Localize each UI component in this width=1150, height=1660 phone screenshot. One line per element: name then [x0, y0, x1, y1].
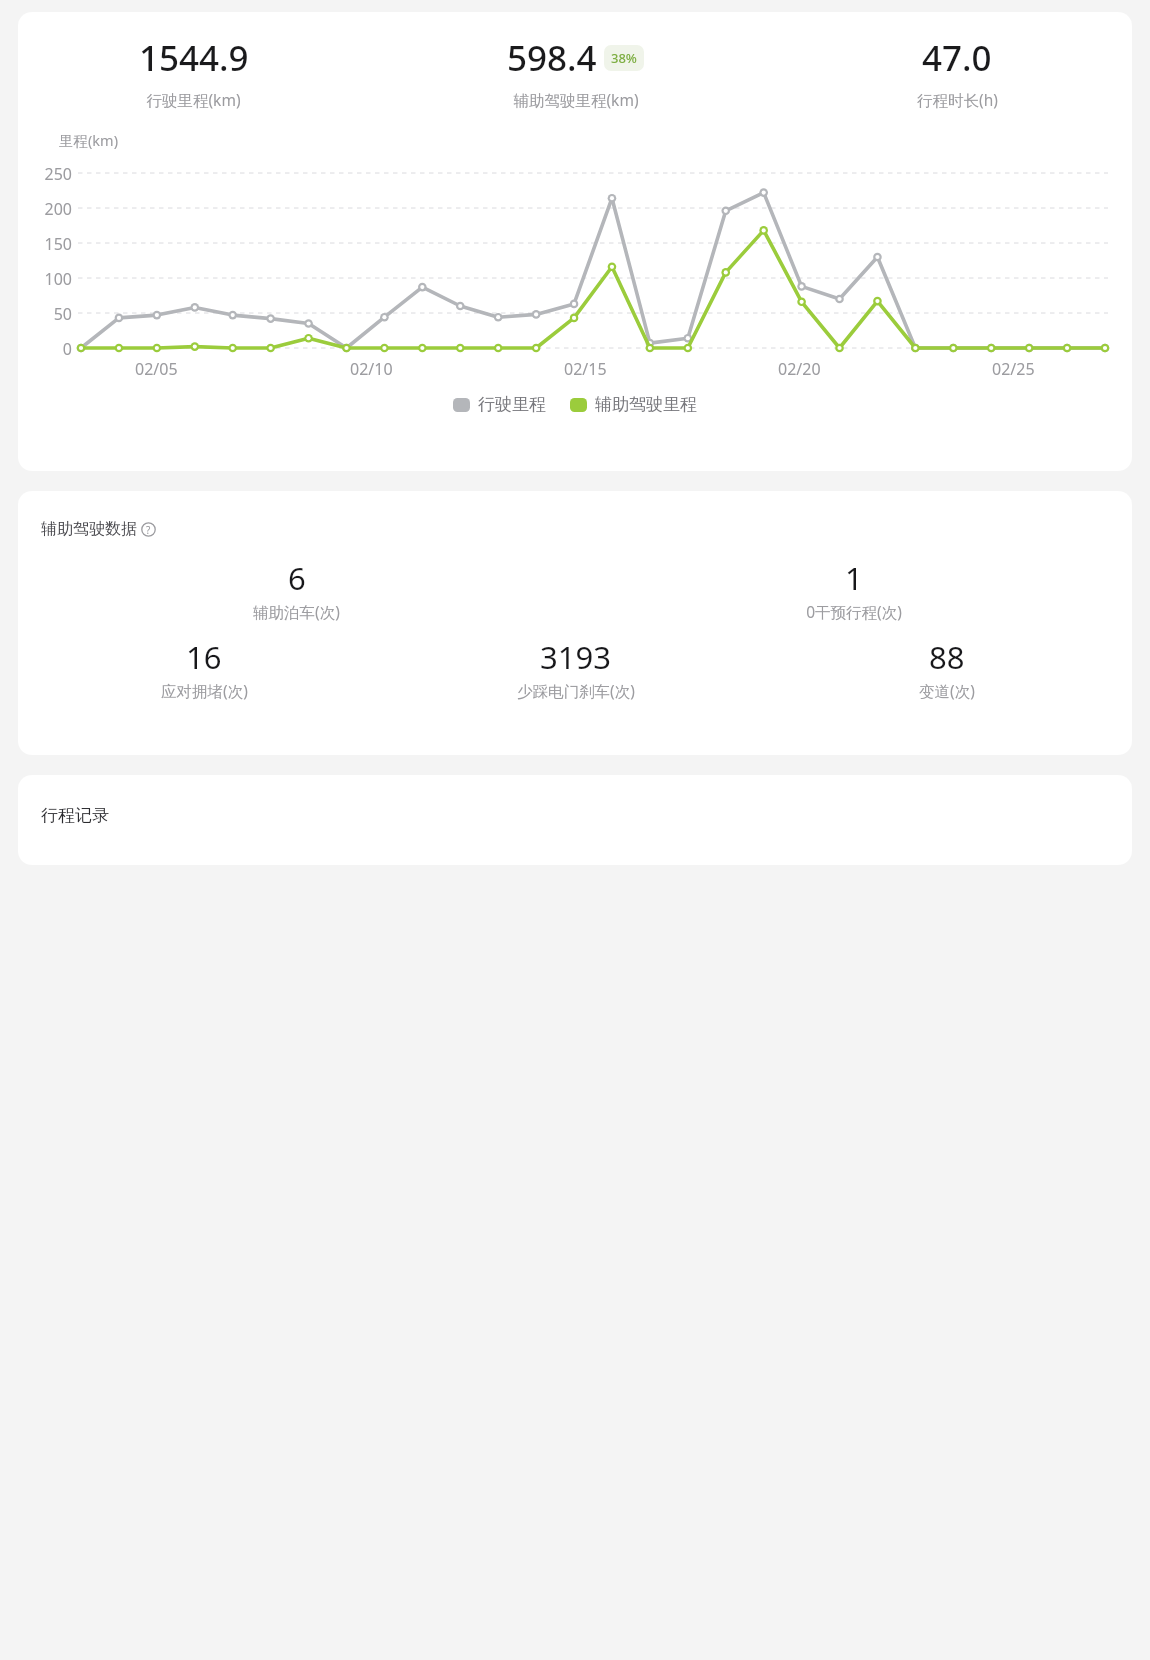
staticText: 150	[20, 233, 72, 255]
staticText: 02/20	[778, 358, 821, 380]
button[interactable]: 行驶里程	[453, 394, 546, 415]
other: Help	[141, 522, 156, 537]
staticText: 辅助驾驶里程(km)	[513, 89, 639, 110]
staticText: 辅助泊车(次)	[253, 601, 340, 622]
staticText: 6	[288, 557, 306, 599]
staticText: 88	[929, 636, 965, 678]
staticText: 38%	[611, 49, 637, 67]
staticText: 16	[186, 636, 222, 678]
staticText: 少踩电门刹车(次)	[517, 680, 635, 701]
staticText: 47.0	[922, 34, 992, 82]
button[interactable]: 辅助驾驶数据	[41, 519, 156, 539]
button[interactable]: 辅助驾驶里程	[570, 394, 697, 415]
button[interactable]: 88	[761, 636, 1132, 701]
button[interactable]: 6	[18, 557, 575, 622]
staticText: 应对拥堵(次)	[161, 680, 248, 701]
button[interactable]: 3193	[390, 636, 761, 701]
button[interactable]: 16	[18, 636, 390, 701]
staticText: 200	[20, 198, 72, 220]
staticText: 行程时长(h)	[917, 89, 998, 110]
staticText: 行驶里程	[478, 394, 546, 415]
staticText: 0	[20, 338, 72, 360]
staticText: 02/15	[564, 358, 607, 380]
staticText: 1	[845, 557, 863, 599]
staticText: 02/10	[350, 358, 393, 380]
button[interactable]: 1	[575, 557, 1132, 622]
staticText: 598.4	[507, 34, 597, 82]
staticText: 辅助驾驶里程	[595, 394, 697, 415]
staticText: 50	[20, 303, 72, 325]
staticText: 1544.9	[139, 34, 249, 82]
staticText: 变道(次)	[919, 680, 975, 701]
staticText: 行程记录	[41, 805, 109, 826]
staticText: 100	[20, 268, 72, 290]
staticText: 02/25	[992, 358, 1035, 380]
staticText: 3193	[540, 636, 611, 678]
staticText: 行驶里程(km)	[146, 89, 241, 110]
staticText: 02/05	[135, 358, 178, 380]
staticText: 250	[20, 163, 72, 185]
staticText: 辅助驾驶数据	[41, 519, 137, 539]
staticText: ?	[146, 523, 151, 537]
staticText: 0干预行程(次)	[806, 601, 902, 622]
staticText: 里程(km)	[59, 130, 119, 150]
